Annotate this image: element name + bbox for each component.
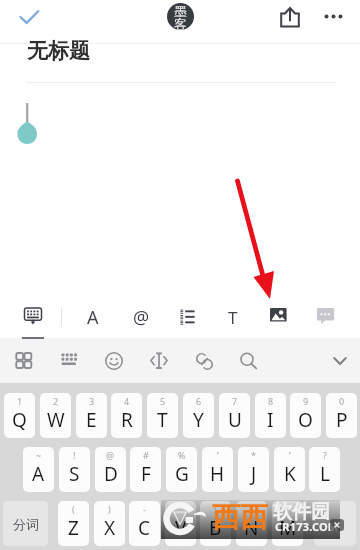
staticText: - [143,503,146,515]
button[interactable]: @ [95,447,126,492]
staticText: W [47,407,65,433]
button[interactable]: @ [123,302,159,332]
staticText: ? [323,449,327,461]
staticText: 8 [268,395,274,407]
staticText: I [267,407,274,433]
button[interactable]: 9 [290,393,321,438]
staticText: B [209,515,222,541]
staticText: D [104,461,118,487]
button[interactable]: ; [236,501,267,546]
button[interactable]: 3 [76,393,107,438]
button[interactable]: Keyboard layout [53,345,85,377]
button[interactable]: 8 [255,393,286,438]
staticText: O [298,407,313,433]
button[interactable]: 1 [4,393,35,438]
button[interactable]: Close watermark [330,519,344,531]
staticText: 7 [232,395,238,407]
button[interactable]: - [129,501,160,546]
staticText: T [157,407,168,433]
staticText: P [336,407,348,433]
staticText: S [69,461,80,487]
staticText: * [251,449,256,461]
staticText: @ [106,449,115,461]
button[interactable]: T [215,302,251,332]
button[interactable]: Emoji [98,345,130,377]
button[interactable]: Share [276,3,303,30]
staticText: 3 [89,395,95,407]
button[interactable]: # [130,447,161,492]
staticText: # [143,449,149,461]
button[interactable]: Apps [8,345,40,377]
staticText: G [175,461,189,487]
staticText: 5 [160,395,166,407]
button[interactable]: Collapse keyboard [324,345,356,377]
button[interactable]: 分词 [3,501,48,546]
staticText: ~ [36,449,42,461]
staticText: Q [12,407,27,433]
staticText: E [86,407,97,433]
button[interactable]: Done [14,2,42,30]
button[interactable]: ? [309,447,340,492]
staticText: M [279,515,297,541]
staticText: ’ [217,449,219,461]
staticText: / [286,503,290,515]
staticText: 6 [196,395,202,407]
staticText: N [244,515,259,541]
staticText: ) [108,503,111,515]
button[interactable]: 5 [147,393,178,438]
staticText: 1 [17,395,23,407]
button[interactable]: ) [94,501,125,546]
button[interactable]: 6 [183,393,214,438]
staticText: 0 [339,395,345,407]
staticText: ’ [180,503,182,515]
button[interactable]: * [238,447,269,492]
staticText: ! [73,449,76,461]
staticText: : [214,503,217,515]
staticText: ; [250,503,253,515]
button[interactable]: ! [59,447,90,492]
button[interactable]: 7 [219,393,250,438]
button[interactable]: 0 [326,393,357,438]
staticText: ’ [289,449,291,461]
button[interactable]: A [75,302,111,332]
button[interactable]: Insert image [270,308,287,323]
staticText: @ [133,305,150,330]
staticText: 2 [53,395,59,407]
button[interactable]: / [272,501,303,546]
staticText: A [87,305,99,330]
button[interactable]: ~ [23,447,54,492]
staticText: F [141,461,151,487]
staticText: % [178,449,186,461]
button[interactable]: Keyboard [24,308,42,326]
staticText: 软件园 [273,500,330,524]
button[interactable]: Search [232,345,265,377]
staticText: Y [193,407,204,433]
button[interactable]: ’ [202,447,233,492]
staticText: T [228,306,238,329]
staticText: J [251,461,257,487]
button[interactable]: 无标题 [27,38,227,64]
button[interactable]: Backspace [314,501,356,546]
button[interactable]: ( [58,501,89,546]
button[interactable]: Profile [167,3,194,30]
staticText: 9 [303,395,309,407]
staticText: 墨 客 [174,3,187,30]
button[interactable]: Comment [317,308,335,325]
button[interactable]: More options [320,3,347,30]
staticText: A [32,461,45,487]
button[interactable]: 4 [111,393,142,438]
staticText: R [121,407,133,433]
staticText: U [228,407,242,433]
staticText: L [320,461,330,487]
button[interactable]: Cursor control [143,345,175,377]
button[interactable]: ’ [165,501,196,546]
staticText: ( [72,503,75,515]
staticText: C [138,515,151,541]
button[interactable]: 2 [40,393,71,438]
button[interactable]: ’ [274,447,305,492]
staticText: K [284,461,296,487]
button[interactable]: Numbered list [172,302,202,330]
button[interactable]: : [200,501,231,546]
button[interactable]: % [166,447,197,492]
button[interactable]: Attachments [188,345,221,377]
